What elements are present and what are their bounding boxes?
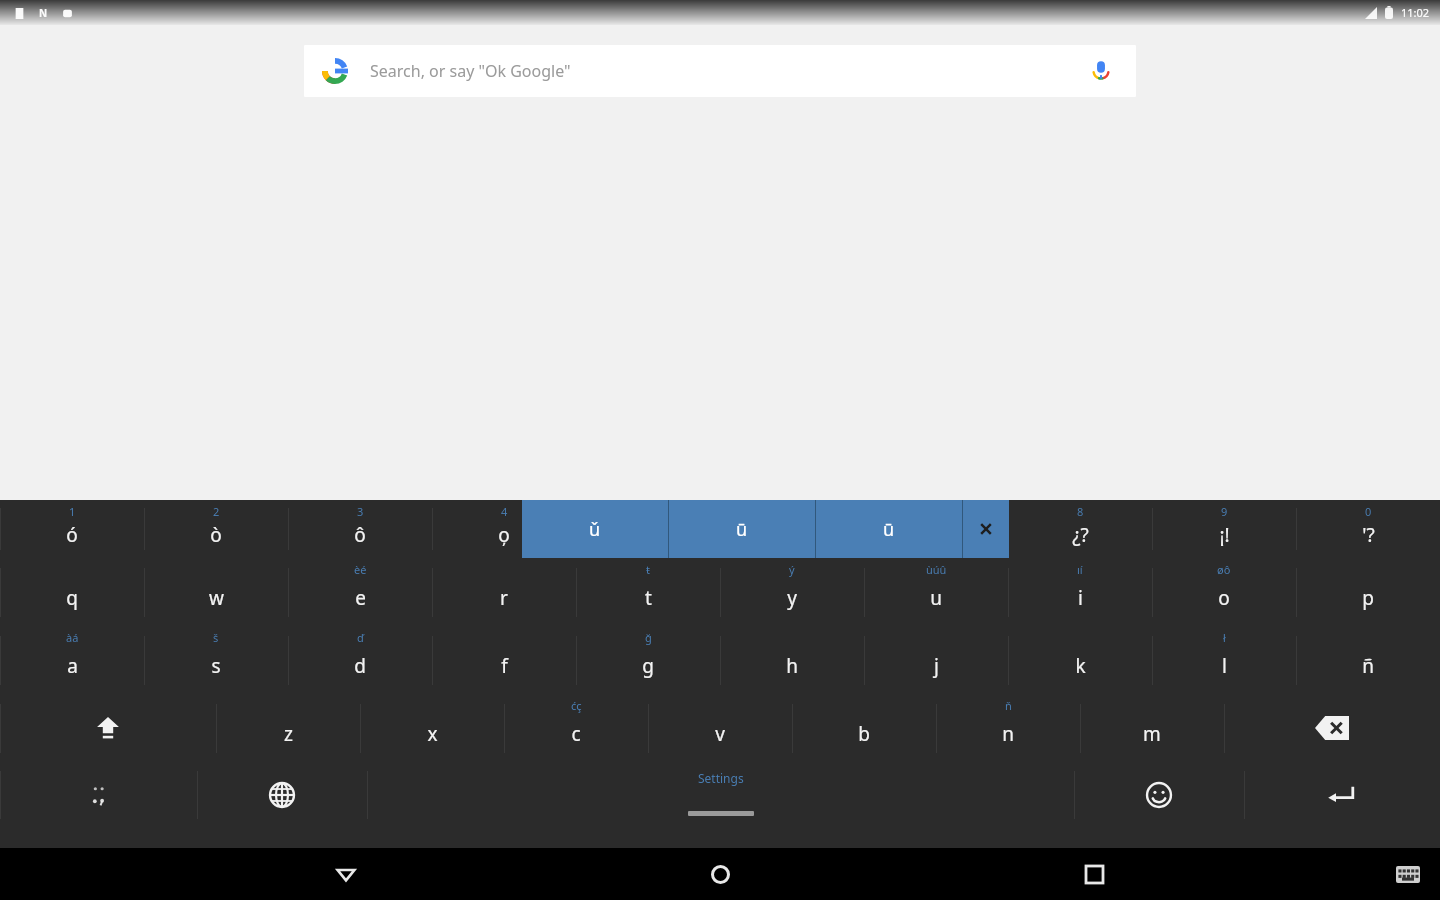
- button[interactable]: øô: [1152, 558, 1296, 626]
- button[interactable]: èé: [288, 558, 432, 626]
- button[interactable]: Back: [318, 848, 374, 900]
- button[interactable]: q: [0, 558, 144, 626]
- staticText: n: [1002, 721, 1014, 747]
- button[interactable]: 1: [0, 500, 144, 558]
- staticText: a: [67, 653, 78, 679]
- staticText: ď: [357, 630, 364, 645]
- staticText: ň: [1005, 698, 1012, 713]
- staticText: 9: [1221, 504, 1228, 519]
- staticText: h: [786, 653, 798, 679]
- button[interactable]: f: [432, 626, 576, 694]
- button[interactable]: w: [144, 558, 288, 626]
- staticText: ǔ: [589, 517, 601, 542]
- staticText: s: [211, 653, 221, 679]
- button[interactable]: Symbols: [0, 762, 197, 828]
- staticText: ćç: [571, 698, 582, 713]
- button[interactable]: Backspace: [1224, 694, 1440, 762]
- staticText: ł: [1223, 630, 1226, 645]
- button[interactable]: š: [144, 626, 288, 694]
- button[interactable]: ď: [288, 626, 432, 694]
- button[interactable]: ùúû: [864, 558, 1008, 626]
- button[interactable]: ň: [936, 694, 1080, 762]
- button[interactable]: 8: [1008, 500, 1152, 558]
- button[interactable]: Voice search: [1084, 54, 1118, 88]
- staticText: t: [645, 585, 652, 611]
- button[interactable]: àá: [0, 626, 144, 694]
- button[interactable]: Change language: [197, 762, 367, 828]
- button[interactable]: ū: [816, 500, 962, 558]
- staticText: ¿?: [1072, 522, 1089, 548]
- button[interactable]: 4: [432, 500, 576, 558]
- staticText: š: [213, 630, 219, 645]
- button[interactable]: v: [648, 694, 792, 762]
- staticText: v: [715, 721, 725, 747]
- button[interactable]: Shift: [0, 694, 216, 762]
- button[interactable]: r: [432, 558, 576, 626]
- staticText: d: [354, 653, 366, 679]
- button[interactable]: ǔ: [522, 500, 668, 558]
- staticText: i: [1078, 585, 1083, 611]
- button[interactable]: Emoji: [1074, 762, 1244, 828]
- button[interactable]: 9: [1152, 500, 1296, 558]
- button[interactable]: ıí: [1008, 558, 1152, 626]
- button[interactable]: 7: [864, 500, 1008, 558]
- staticText: g: [642, 653, 654, 679]
- staticText: Settings: [698, 770, 744, 786]
- button[interactable]: ł: [1152, 626, 1296, 694]
- staticText: ý: [789, 562, 795, 577]
- staticText: 8: [1077, 504, 1084, 519]
- staticText: '?: [1362, 522, 1375, 548]
- button[interactable]: 6: [720, 500, 864, 558]
- button[interactable]: j: [864, 626, 1008, 694]
- button[interactable]: z: [216, 694, 360, 762]
- staticText: z: [284, 721, 293, 747]
- button[interactable]: m: [1080, 694, 1224, 762]
- staticText: k: [1075, 653, 1086, 679]
- staticText: ū: [883, 517, 895, 542]
- staticText: 11:02: [1401, 5, 1430, 20]
- button[interactable]: x: [360, 694, 504, 762]
- staticText: ó: [66, 522, 78, 548]
- button[interactable]: Close suggestions: [963, 500, 1009, 558]
- staticText: x: [427, 721, 438, 747]
- staticText: j: [934, 653, 939, 679]
- button[interactable]: b: [792, 694, 936, 762]
- staticText: 2: [213, 504, 220, 519]
- button[interactable]: 2: [144, 500, 288, 558]
- button[interactable]: k: [1008, 626, 1152, 694]
- staticText: b: [858, 721, 870, 747]
- staticText: Search, or say "Ok Google": [370, 60, 571, 82]
- button[interactable]: h: [720, 626, 864, 694]
- staticText: ùúû: [926, 562, 947, 577]
- button[interactable]: Space: [367, 762, 1074, 828]
- button[interactable]: ý: [720, 558, 864, 626]
- button[interactable]: 5: [576, 500, 720, 558]
- staticText: ñ: [1362, 653, 1374, 679]
- staticText: w: [209, 585, 224, 611]
- staticText: ğ: [645, 630, 652, 645]
- button[interactable]: Home: [692, 848, 748, 900]
- button[interactable]: ū: [669, 500, 815, 558]
- staticText: 4: [501, 504, 508, 519]
- button[interactable]: Switch keyboard: [1388, 854, 1428, 894]
- staticText: ô: [354, 522, 366, 548]
- button[interactable]: ŧ: [576, 558, 720, 626]
- staticText: y: [787, 585, 797, 611]
- staticText: àá: [66, 630, 79, 645]
- button[interactable]: p: [1296, 558, 1440, 626]
- button[interactable]: ğ: [576, 626, 720, 694]
- button[interactable]: 3: [288, 500, 432, 558]
- button[interactable]: Enter: [1244, 762, 1440, 828]
- staticText: ū: [736, 517, 748, 542]
- button[interactable]: ñ: [1296, 626, 1440, 694]
- button[interactable]: 0: [1296, 500, 1440, 558]
- staticText: q: [66, 585, 78, 611]
- staticText: f: [501, 653, 508, 679]
- button[interactable]: Recent apps: [1066, 848, 1122, 900]
- button[interactable]: Search, or say "Ok Google": [304, 45, 1136, 97]
- button[interactable]: ćç: [504, 694, 648, 762]
- staticText: 1: [69, 504, 76, 519]
